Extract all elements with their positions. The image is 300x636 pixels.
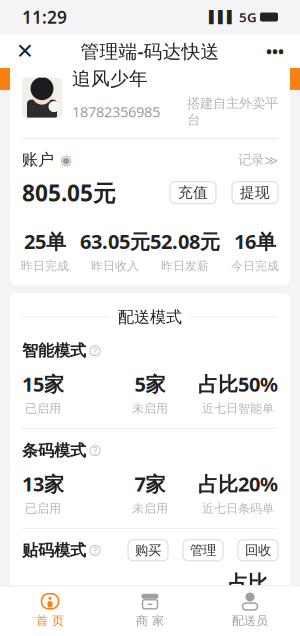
button[interactable]: 记录≫ [238,152,278,168]
staticText: ✕ [16,39,34,63]
staticText: 配送员 [232,613,268,628]
staticText: 805.05元 [22,178,116,208]
staticText: 未启用 [132,501,168,516]
staticText: 15家 [22,371,64,397]
staticText: 近七日智能单 [202,401,274,416]
staticText: 智能模式 [22,341,86,361]
staticText: 昨日收入 [91,259,139,273]
staticText: 16单 [234,228,276,255]
staticText: 11:29 [22,5,67,28]
button[interactable]: 充值 [170,182,216,204]
staticText: 剩余可发 [24,621,72,636]
staticText: ? [93,345,97,357]
staticText: 账户 [22,150,54,170]
staticText: 条码模式 [22,441,86,461]
staticText: ? [93,444,97,457]
staticText: 回收 [245,542,271,559]
staticText: 商 家 [136,613,164,628]
staticText: 25单 [24,228,66,255]
staticText: 首 页 [36,613,64,628]
staticText: 占比20% [198,471,278,497]
staticText: 配送模式 [118,307,182,327]
staticText: 占比30% [228,571,268,622]
staticText: 13家 [22,471,64,497]
staticText: 5G [239,8,257,26]
button[interactable]: More options [258,34,292,68]
button[interactable]: 回收 [238,540,278,561]
staticText: 18782356985 [72,102,160,121]
button[interactable]: 商 家 [100,586,200,636]
staticText: 追风少年 [72,67,148,90]
staticText: 近7天日均用 [90,613,145,636]
button[interactable]: Close [8,34,42,68]
staticText: 已启用 [25,401,61,416]
staticText: 今日完成 [231,259,279,273]
staticText: 贴码模式 [22,540,86,560]
staticText: ? [93,544,97,557]
staticText: 63.05元 [80,228,150,255]
staticText: ••• [266,40,284,62]
button[interactable]: 购买 [128,540,168,561]
staticText: 占比50% [198,371,278,397]
staticText: 5家 [134,371,165,397]
staticText: 搭建自主外卖平台 [187,95,278,128]
staticText: 购买 [135,542,161,559]
staticText: 52.08元 [150,228,220,255]
staticText: 未启用 [132,401,168,416]
staticText: 记录≫ [238,152,278,168]
staticText: ◉ [60,152,72,167]
staticText: 提现 [240,184,270,202]
button[interactable]: 提现 [232,182,278,204]
button[interactable]: 配送员 [200,586,300,636]
staticText: 已启用 [25,501,61,516]
staticText: 昨日发薪 [161,259,209,273]
staticText: 管理端-码达快送 [80,39,219,63]
staticText: 管理 [190,542,216,559]
button[interactable]: Toggle balance visibility [58,152,74,168]
staticText: 265帖 [22,590,75,617]
staticText: ▌▌▌ [209,10,236,24]
staticText: 预计可用 [158,621,206,636]
staticText: 昨日完成 [21,259,69,273]
button[interactable]: 管理 [183,540,223,561]
staticText: 近七日条码单 [202,501,274,516]
button[interactable]: 首 页 [0,586,100,636]
staticText: 7家 [134,471,165,497]
staticText: 12天 [161,590,203,617]
staticText: 充值 [178,184,208,202]
